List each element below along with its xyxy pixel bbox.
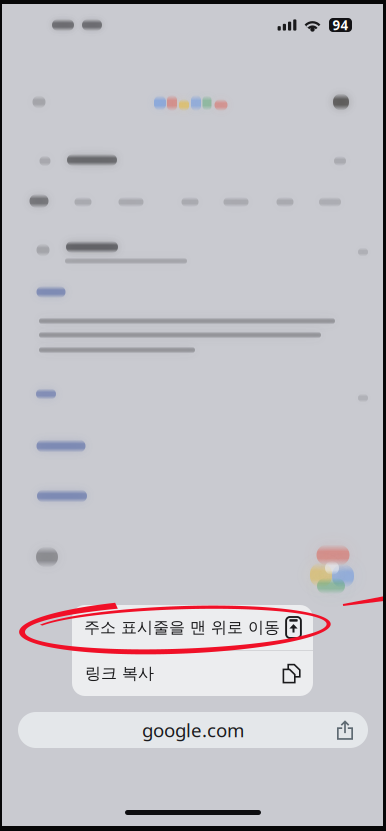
button[interactable]: 링크 복사 bbox=[72, 651, 313, 696]
staticText: 주소 표시줄을 맨 위로 이동 bbox=[84, 618, 280, 637]
staticText: google.com bbox=[142, 718, 244, 742]
button[interactable]: google.com bbox=[18, 712, 368, 748]
staticText: 링크 복사 bbox=[85, 664, 154, 683]
button[interactable]: 주소 표시줄을 맨 위로 이동 bbox=[72, 605, 313, 650]
staticText: 94 bbox=[332, 16, 348, 34]
